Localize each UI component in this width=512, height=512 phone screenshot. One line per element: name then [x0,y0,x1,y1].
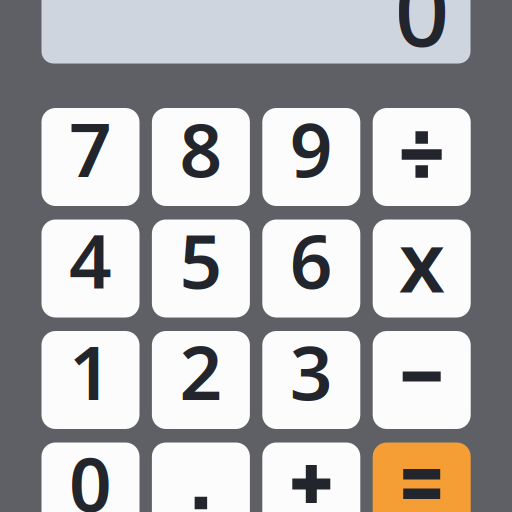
button[interactable]: 0 [41,442,139,512]
button[interactable]: 8 [152,108,250,206]
button[interactable]: 9 [262,108,360,206]
staticText: 6 [290,210,333,309]
button[interactable]: 4 [41,219,139,317]
button[interactable]: 1 [41,331,139,429]
button[interactable]: 5 [152,219,250,317]
staticText: x [399,206,445,315]
staticText: 5 [179,210,222,309]
button[interactable]: 2 [152,331,250,429]
button[interactable]: Equals [373,442,471,512]
staticText: 4 [69,210,112,309]
staticText: 8 [179,98,222,198]
staticText: 0 [394,0,449,73]
staticText: 7 [69,98,112,198]
button[interactable]: Decimal point [152,442,250,512]
button[interactable]: 3 [262,331,360,429]
button[interactable]: 6 [262,219,360,317]
button[interactable]: Divide [373,108,471,206]
staticText: 2 [179,321,222,421]
button[interactable]: Plus [262,442,360,512]
staticText: 9 [290,98,333,198]
staticText: 0 [69,433,112,512]
button[interactable]: Multiply [373,219,471,317]
button[interactable]: Minus [373,331,471,429]
staticText: 3 [290,321,333,421]
button[interactable]: 7 [41,108,139,206]
staticText: 1 [69,321,112,421]
